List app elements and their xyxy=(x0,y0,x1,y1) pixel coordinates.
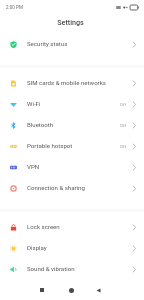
button[interactable]: Security status xyxy=(0,34,144,55)
button[interactable]: Sound & vibration xyxy=(0,259,144,280)
staticText: Off xyxy=(120,123,126,128)
button[interactable]: Wi-Fi xyxy=(0,94,144,115)
button[interactable]: Home xyxy=(61,280,81,300)
staticText: Settings xyxy=(57,18,84,26)
button[interactable]: SIM cards & mobile networks xyxy=(0,73,144,94)
button[interactable]: Back xyxy=(88,280,108,300)
staticText: Security status xyxy=(27,40,131,47)
staticText: VPN xyxy=(27,163,131,170)
staticText: Portable hotspot xyxy=(27,142,120,149)
staticText: Lock screen xyxy=(27,223,131,230)
staticText: SIM cards & mobile networks xyxy=(27,79,131,86)
staticText: 2:00 PM xyxy=(6,5,23,10)
staticText: Off xyxy=(120,144,126,149)
button[interactable]: VPN xyxy=(0,157,144,178)
staticText: Off xyxy=(120,102,126,107)
button[interactable]: Recent apps xyxy=(32,280,52,300)
staticText: Wi-Fi xyxy=(27,100,120,107)
staticText: Connection & sharing xyxy=(27,184,131,191)
button[interactable]: Bluetooth xyxy=(0,115,144,136)
button[interactable]: Display xyxy=(0,238,144,259)
staticText: Bluetooth xyxy=(27,121,120,128)
button[interactable]: Connection & sharing xyxy=(0,178,144,199)
button[interactable]: Lock screen xyxy=(0,217,144,238)
button[interactable]: Portable hotspot xyxy=(0,136,144,157)
staticText: Display xyxy=(27,244,131,251)
staticText: Sound & vibration xyxy=(27,265,131,272)
